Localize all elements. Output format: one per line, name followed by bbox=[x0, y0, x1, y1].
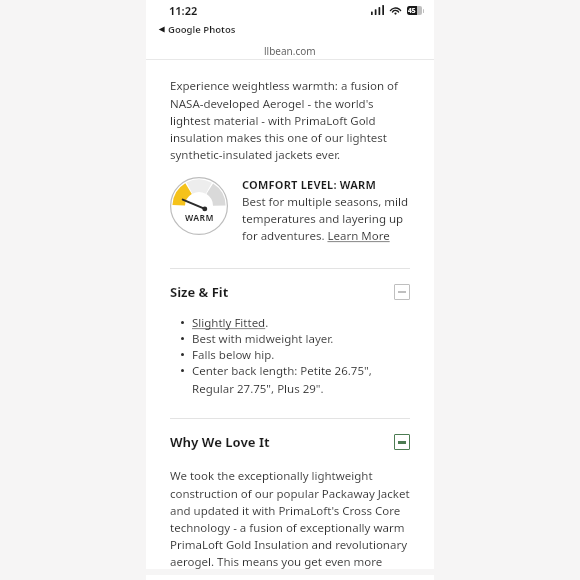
staticText: Google Photos bbox=[168, 23, 236, 36]
other: Collapse Why We Love It bbox=[394, 434, 410, 450]
button[interactable]: llbean.com bbox=[146, 42, 434, 59]
staticText: Center back length: Petite 26.75", Regul… bbox=[192, 363, 410, 396]
staticText: Best with midweight layer. bbox=[192, 331, 334, 347]
staticText: 45 bbox=[408, 6, 416, 15]
staticText: Size & Fit bbox=[170, 283, 229, 301]
staticText: Best for multiple seasons, mild temperat… bbox=[242, 194, 410, 244]
staticText: We took the exceptionally lightweight co… bbox=[170, 468, 410, 569]
button[interactable]: Why We Love It bbox=[170, 433, 410, 451]
button[interactable]: Google Photos bbox=[156, 22, 238, 37]
staticText: Slightly Fitted. bbox=[192, 315, 269, 331]
staticText: Why We Love It bbox=[170, 433, 270, 451]
other: Collapse Size & Fit bbox=[394, 284, 410, 300]
staticText: COMFORT LEVEL: WARM bbox=[242, 177, 376, 192]
staticText: llbean.com bbox=[264, 44, 316, 58]
staticText: 11:22 bbox=[169, 3, 198, 18]
staticText: Experience weightless warmth: a fusion o… bbox=[170, 78, 410, 162]
staticText: WARM bbox=[185, 212, 214, 224]
staticText: Falls below hip. bbox=[192, 347, 275, 363]
button[interactable]: Size & Fit bbox=[170, 283, 410, 301]
